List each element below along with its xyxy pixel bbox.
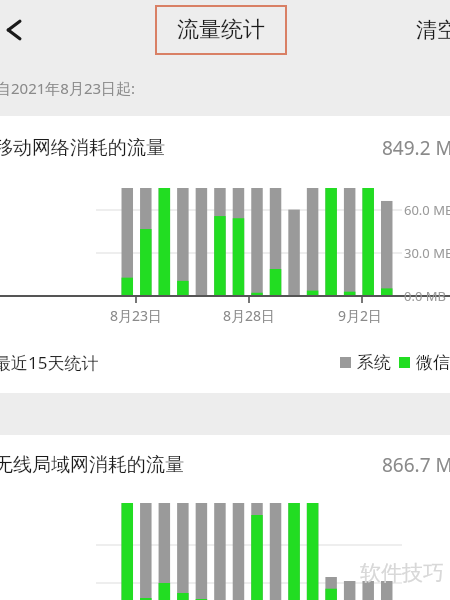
button[interactable]: 清空: [416, 17, 450, 43]
staticText: 无线局域网消耗的流量: [0, 453, 184, 477]
staticText: 866.7 MB: [382, 452, 450, 478]
staticText: 移动网络消耗的流量: [0, 136, 165, 160]
staticText: 软件技巧: [360, 560, 444, 586]
button[interactable]: 无线局域网消耗的流量: [0, 435, 450, 495]
button[interactable]: 流量统计: [155, 5, 287, 55]
staticText: 9月2日: [338, 306, 383, 325]
staticText: 30.0 MB: [404, 244, 450, 262]
staticText: 0.0 MB: [404, 287, 446, 305]
staticText: 自2021年8月23日起:: [0, 78, 136, 98]
staticText: 8月23日: [110, 306, 163, 325]
staticText: 清空: [416, 17, 450, 43]
staticText: 最近15天统计: [0, 351, 99, 374]
staticText: 849.2 MB: [382, 135, 450, 161]
staticText: 流量统计: [177, 16, 265, 44]
staticText: 8月28日: [223, 306, 276, 325]
staticText: 系统: [357, 352, 391, 373]
button[interactable]: Back: [0, 8, 30, 52]
button[interactable]: 移动网络消耗的流量: [0, 116, 450, 180]
staticText: 60.0 MB: [404, 201, 450, 219]
staticText: 微信: [416, 352, 450, 373]
